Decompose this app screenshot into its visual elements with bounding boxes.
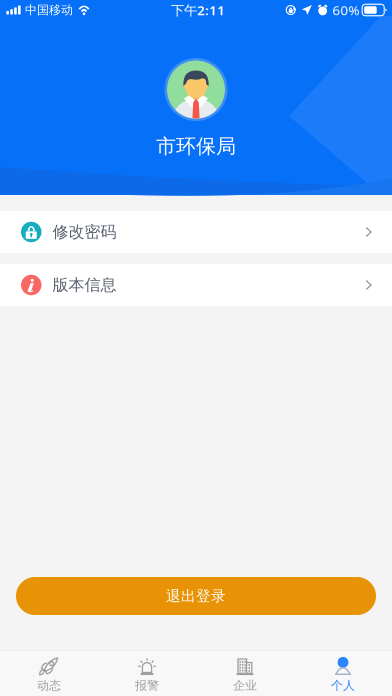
button[interactable]: 个人 — [294, 650, 392, 696]
staticText: 企业 — [233, 678, 257, 693]
staticText: 报警 — [135, 678, 159, 693]
staticText: 个人 — [331, 678, 355, 693]
button[interactable]: 动态 — [0, 650, 98, 696]
staticText: 版本信息 — [52, 275, 116, 295]
staticText: 修改密码 — [52, 222, 116, 242]
button[interactable]: 修改密码 — [0, 211, 392, 253]
staticText: 下午2:11 — [171, 1, 225, 19]
staticText: 中国移动 — [25, 3, 73, 17]
button[interactable]: 版本信息 — [0, 264, 392, 306]
button[interactable]: 退出登录 — [16, 577, 376, 615]
staticText: 退出登录 — [166, 587, 226, 605]
button[interactable]: 报警 — [98, 650, 196, 696]
staticText: 动态 — [37, 678, 61, 693]
button[interactable]: 企业 — [196, 650, 294, 696]
staticText: 市环保局 — [156, 134, 236, 159]
staticText: 60% — [332, 1, 359, 19]
